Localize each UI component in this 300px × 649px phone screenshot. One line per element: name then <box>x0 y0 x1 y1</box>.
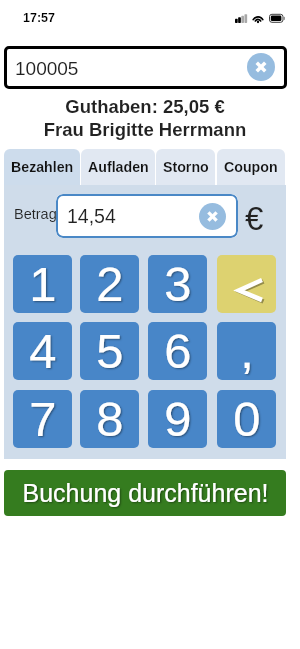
staticText: 14,54 <box>67 205 116 227</box>
staticText: 0 <box>233 392 261 447</box>
button[interactable]: Aufladen <box>81 149 155 186</box>
button[interactable]: Clear <box>199 203 226 230</box>
staticText: 3 <box>164 257 192 312</box>
staticText: Betrag <box>14 206 57 222</box>
button[interactable]: 8 <box>80 390 139 448</box>
button[interactable]: 3 <box>148 255 207 313</box>
button[interactable]: 7 <box>13 390 72 448</box>
staticText: Coupon <box>224 159 278 175</box>
button[interactable]: 9 <box>148 390 207 448</box>
staticText: 100005 <box>15 58 79 79</box>
staticText: 6 <box>164 324 192 379</box>
button[interactable]: Coupon <box>217 149 285 186</box>
staticText: € <box>245 200 264 237</box>
staticText: Guthaben: 25,05 € <box>0 96 290 117</box>
button[interactable]: 2 <box>80 255 139 313</box>
button[interactable]: 1 <box>13 255 72 313</box>
button[interactable]: 6 <box>148 322 207 380</box>
staticText: Bezahlen <box>11 159 74 175</box>
staticText: 9 <box>164 392 192 447</box>
button[interactable]: , <box>217 322 276 380</box>
button[interactable]: Bezahlen <box>4 149 80 186</box>
staticText: Aufladen <box>88 159 149 175</box>
button[interactable]: Storno <box>156 149 215 186</box>
button[interactable]: 4 <box>13 322 72 380</box>
staticText: 1 <box>29 257 57 312</box>
staticText: 5 <box>96 324 124 379</box>
staticText: 7 <box>29 392 57 447</box>
button[interactable]: 5 <box>80 322 139 380</box>
button[interactable]: Clear <box>247 53 275 81</box>
staticText: 17:57 <box>23 11 55 25</box>
staticText: Frau Brigitte Herrmann <box>0 119 290 140</box>
button[interactable]: Backspace <box>217 255 276 313</box>
staticText: 4 <box>29 324 57 379</box>
staticText: Buchung durchführen! <box>22 479 269 507</box>
button[interactable]: 100005 <box>4 46 287 89</box>
staticText: 8 <box>96 392 124 447</box>
staticText: 2 <box>96 257 124 312</box>
button[interactable]: Buchung durchführen! <box>4 470 286 516</box>
staticText: , <box>240 324 254 379</box>
button[interactable]: 14,54 <box>56 194 238 238</box>
button[interactable]: 0 <box>217 390 276 448</box>
staticText: Storno <box>163 159 209 175</box>
